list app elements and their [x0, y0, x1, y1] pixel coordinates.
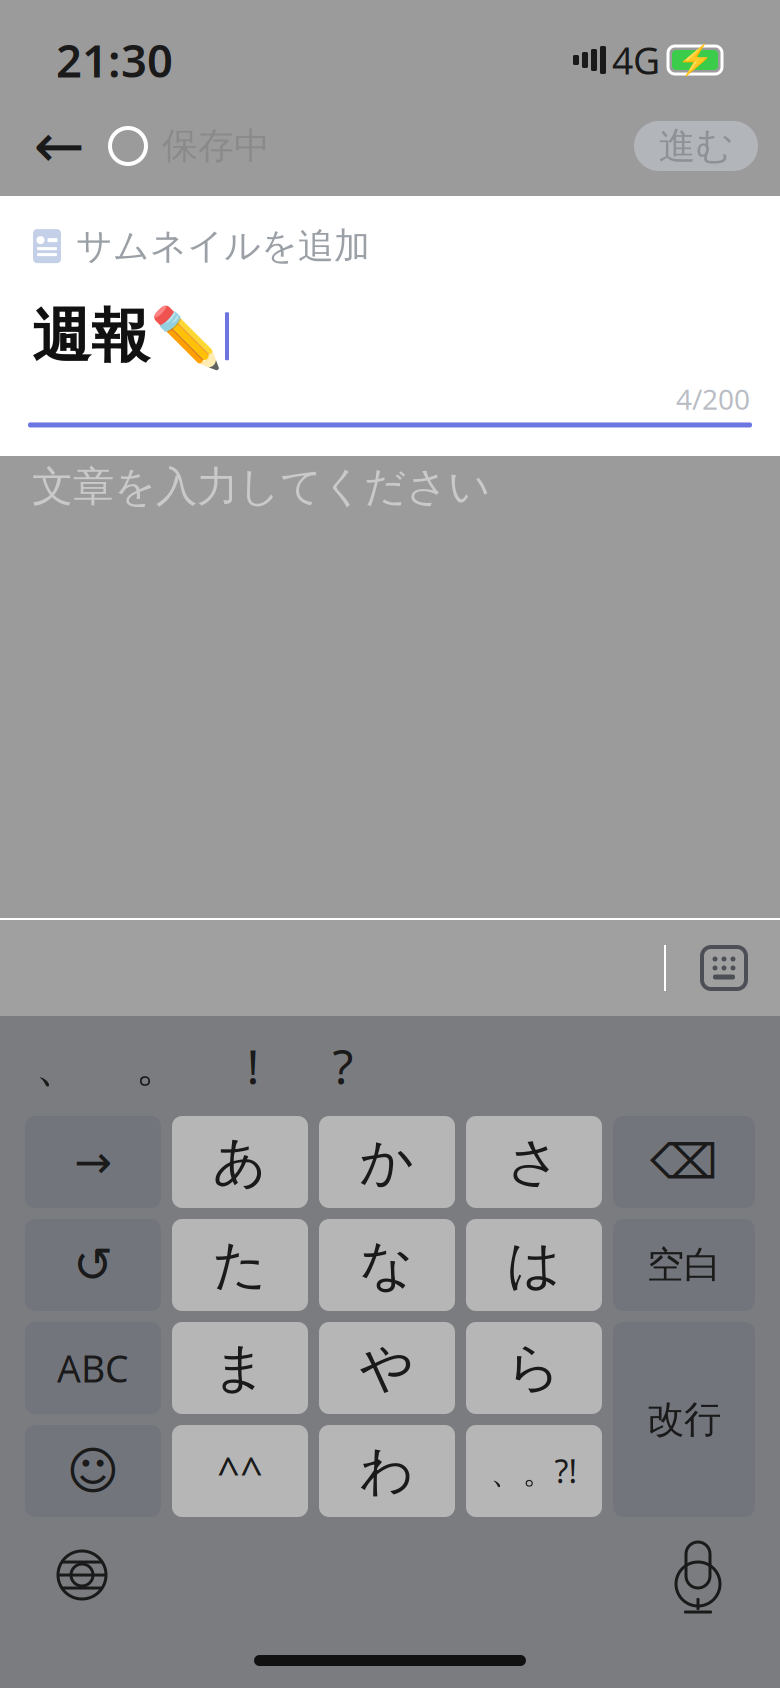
- staticText: た: [212, 1232, 267, 1298]
- button[interactable]: 、。?!: [466, 1425, 602, 1517]
- button[interactable]: 進む: [634, 121, 758, 171]
- staticText: →: [74, 1136, 112, 1188]
- staticText: !: [246, 1034, 259, 1098]
- button[interactable]: あ: [172, 1116, 308, 1208]
- staticText: さ: [506, 1129, 561, 1195]
- button[interactable]: →: [25, 1116, 161, 1208]
- staticText: ↺: [73, 1238, 113, 1292]
- button[interactable]: ^^: [172, 1425, 308, 1517]
- staticText: ^^: [217, 1444, 263, 1497]
- staticText: サムネイルを追加: [76, 224, 370, 268]
- staticText: 4G: [612, 35, 660, 85]
- button[interactable]: さ: [466, 1116, 602, 1208]
- staticText: 、。?!: [490, 1450, 577, 1492]
- staticText: ⌫: [650, 1135, 718, 1189]
- button[interactable]: わ: [319, 1425, 455, 1517]
- staticText: 21:30: [56, 30, 173, 90]
- staticText: な: [359, 1232, 414, 1298]
- button[interactable]: や: [319, 1322, 455, 1414]
- staticText: は: [506, 1232, 561, 1298]
- button[interactable]: た: [172, 1219, 308, 1311]
- staticText: 進む: [658, 123, 733, 169]
- button[interactable]: 空白: [613, 1219, 755, 1311]
- staticText: ?: [332, 1034, 353, 1098]
- staticText: ま: [212, 1335, 267, 1401]
- button[interactable]: !: [208, 1031, 298, 1101]
- staticText: ら: [506, 1335, 561, 1401]
- button[interactable]: 。: [108, 1031, 208, 1101]
- button[interactable]: ABC: [25, 1322, 161, 1414]
- button[interactable]: 音声入力: [652, 1529, 744, 1621]
- button[interactable]: な: [319, 1219, 455, 1311]
- staticText: 改行: [647, 1397, 721, 1442]
- button[interactable]: キーボードを閉じる: [696, 937, 752, 999]
- staticText: 週報✏️: [32, 300, 223, 372]
- staticText: わ: [359, 1438, 414, 1504]
- button[interactable]: ⌫: [613, 1116, 755, 1208]
- button[interactable]: は: [466, 1219, 602, 1311]
- button[interactable]: キーボード切り替え: [36, 1529, 128, 1621]
- button[interactable]: 戻る: [22, 109, 96, 183]
- button[interactable]: ま: [172, 1322, 308, 1414]
- button[interactable]: ら: [466, 1322, 602, 1414]
- staticText: 、: [35, 1038, 80, 1094]
- button[interactable]: ☺: [25, 1425, 161, 1517]
- staticText: ABC: [57, 1343, 129, 1393]
- button[interactable]: ↺: [25, 1219, 161, 1311]
- staticText: ⚡: [676, 43, 713, 77]
- staticText: か: [359, 1129, 414, 1195]
- staticText: あ: [212, 1129, 267, 1195]
- staticText: 。: [135, 1038, 180, 1094]
- staticText: 4/200: [676, 380, 750, 417]
- button[interactable]: ?: [298, 1031, 388, 1101]
- staticText: 文章を入力してください: [32, 461, 490, 512]
- button[interactable]: 、: [8, 1031, 108, 1101]
- staticText: 保存中: [162, 124, 270, 168]
- staticText: 空白: [647, 1242, 721, 1288]
- button[interactable]: サムネイルを追加: [32, 218, 370, 274]
- staticText: ☺: [66, 1442, 119, 1500]
- button[interactable]: 改行: [613, 1322, 755, 1517]
- button[interactable]: か: [319, 1116, 455, 1208]
- staticText: ←: [33, 111, 84, 181]
- staticText: や: [359, 1335, 414, 1401]
